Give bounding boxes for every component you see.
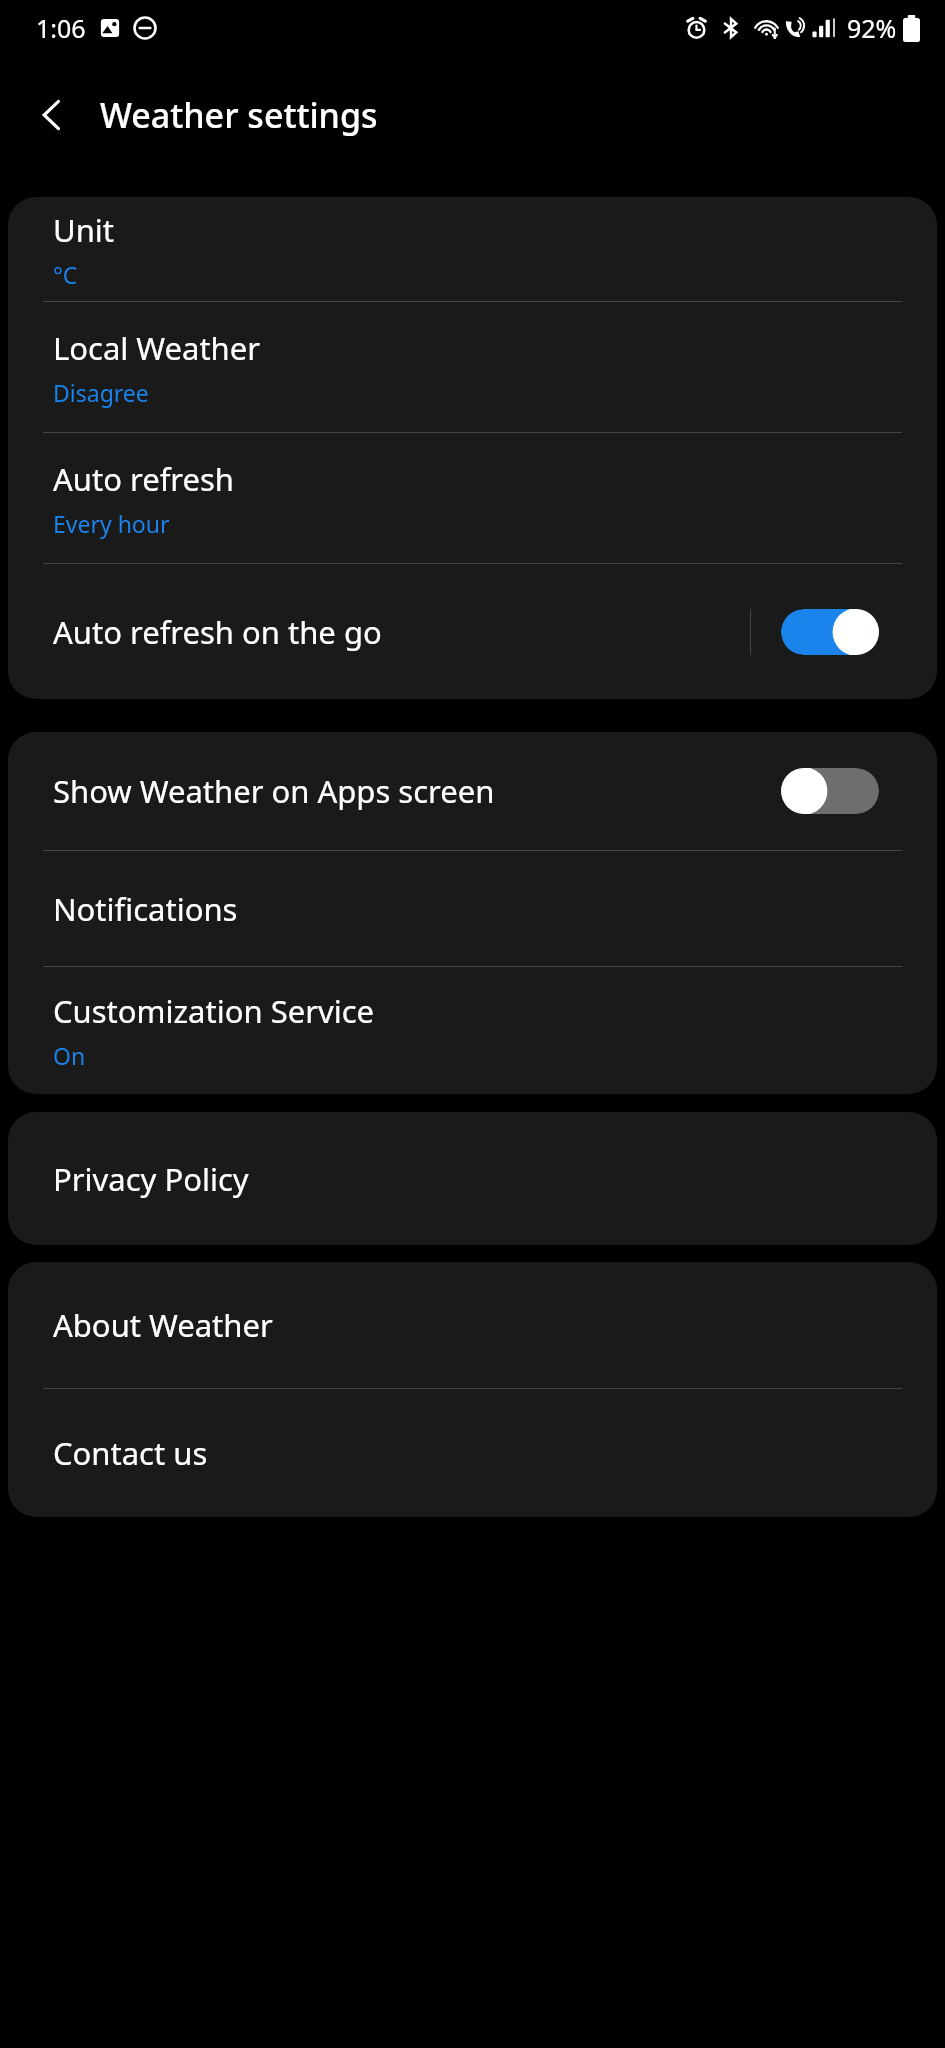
button[interactable]: Auto refresh — [8, 433, 937, 563]
button[interactable]: On — [781, 609, 879, 655]
button[interactable]: Off — [781, 768, 879, 814]
button[interactable]: Unit — [8, 197, 937, 301]
staticText: Disagree — [53, 377, 149, 408]
staticText: Every hour — [53, 508, 170, 539]
staticText: About Weather — [53, 1304, 273, 1346]
staticText: Customization Service — [53, 990, 375, 1032]
staticText: Unit — [53, 209, 115, 251]
staticText: Notifications — [53, 888, 238, 930]
staticText: 1:06 — [36, 11, 86, 45]
button[interactable]: Show Weather on Apps screen — [8, 732, 937, 850]
button[interactable]: Local Weather — [8, 302, 937, 432]
button[interactable]: Privacy Policy — [8, 1112, 937, 1245]
staticText: Auto refresh on the go — [53, 611, 750, 653]
staticText: On — [53, 1040, 86, 1071]
staticText: Auto refresh — [53, 458, 234, 500]
button[interactable]: Customization Service — [8, 967, 937, 1094]
staticText: Show Weather on Apps screen — [53, 770, 781, 812]
staticText: Weather settings — [100, 92, 378, 138]
staticText: °C — [53, 259, 78, 290]
button[interactable]: Notifications — [8, 851, 937, 966]
staticText: 92% — [847, 11, 897, 45]
staticText: Local Weather — [53, 327, 261, 369]
staticText: Privacy Policy — [53, 1158, 249, 1200]
button[interactable]: Back — [22, 84, 84, 146]
staticText: Contact us — [53, 1432, 208, 1474]
button[interactable]: Contact us — [8, 1389, 937, 1517]
button[interactable]: About Weather — [8, 1262, 937, 1388]
button[interactable]: Auto refresh on the go — [8, 564, 937, 699]
